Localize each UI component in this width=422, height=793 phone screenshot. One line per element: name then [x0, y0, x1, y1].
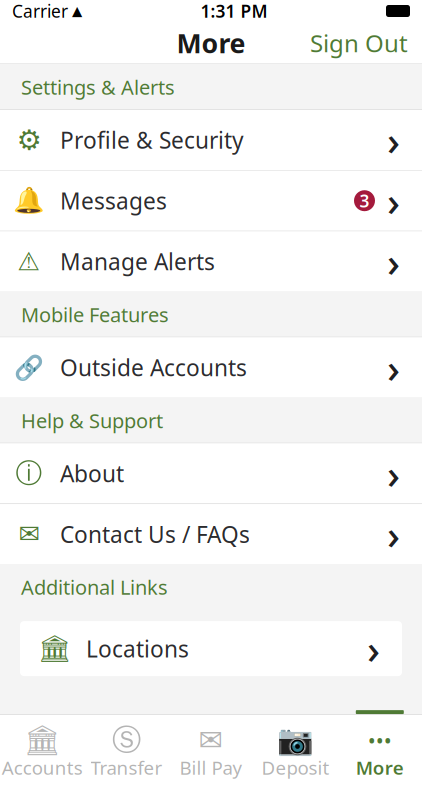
button[interactable]: •••: [338, 714, 422, 792]
staticText: Locations: [86, 633, 189, 664]
staticText: Messages: [60, 186, 167, 216]
staticText: Outside Accounts: [60, 352, 247, 382]
button[interactable]: ✉: [0, 504, 422, 564]
staticText: Accounts: [2, 755, 83, 780]
staticText: ⚠: [17, 247, 40, 276]
staticText: ▲: [68, 3, 82, 18]
staticText: ›: [387, 174, 400, 227]
staticText: 🏛: [24, 723, 61, 757]
staticText: ›: [387, 235, 400, 288]
staticText: Contact Us / FAQs: [60, 519, 250, 549]
staticText: 3: [359, 189, 369, 212]
button[interactable]: ⓘ: [0, 443, 422, 503]
staticText: Additional Links: [21, 574, 168, 600]
button[interactable]: Sign Out: [296, 19, 422, 67]
staticText: 1:31 PM: [200, 0, 267, 22]
staticText: More: [176, 25, 245, 61]
staticText: 🔔: [13, 186, 45, 215]
staticText: •••: [368, 726, 392, 754]
staticText: 📷: [277, 723, 314, 757]
staticText: ›: [387, 507, 400, 561]
staticText: ›: [387, 341, 400, 394]
staticText: More: [356, 755, 404, 780]
button[interactable]: 🏛: [20, 621, 402, 676]
staticText: Carrier: [12, 0, 68, 22]
staticText: Mobile Features: [21, 301, 169, 328]
button[interactable]: 🏛: [0, 714, 84, 792]
staticText: ⚙: [16, 124, 41, 156]
button[interactable]: 🔔: [0, 171, 422, 231]
button[interactable]: ⚠: [0, 231, 422, 291]
button[interactable]: 📷: [253, 714, 338, 792]
staticText: 🏛: [38, 633, 72, 664]
staticText: ›: [387, 113, 400, 166]
button[interactable]: ✉: [169, 714, 253, 792]
staticText: Ⓢ: [112, 722, 141, 758]
staticText: ✉: [18, 520, 39, 548]
button[interactable]: 🔗: [0, 337, 422, 397]
staticText: About: [60, 458, 124, 488]
staticText: ⓘ: [15, 457, 42, 490]
staticText: ›: [387, 447, 400, 500]
staticText: Manage Alerts: [60, 246, 215, 276]
staticText: 🔗: [14, 354, 44, 381]
button[interactable]: Ⓢ: [84, 714, 169, 792]
staticText: Settings & Alerts: [21, 74, 175, 100]
staticText: Bill Pay: [179, 755, 242, 780]
staticText: Deposit: [261, 755, 329, 780]
staticText: ›: [367, 622, 380, 675]
staticText: Profile & Security: [60, 125, 244, 155]
staticText: Sign Out: [310, 27, 408, 59]
staticText: ✉: [198, 723, 223, 757]
staticText: Transfer: [91, 755, 163, 780]
staticText: Help & Support: [21, 407, 163, 434]
button[interactable]: ⚙: [0, 110, 422, 170]
